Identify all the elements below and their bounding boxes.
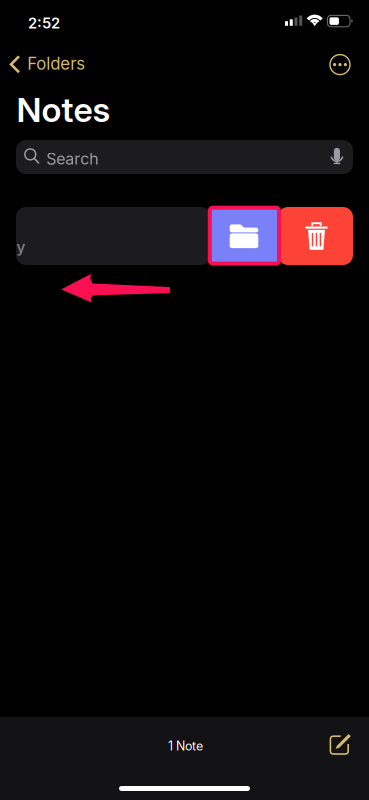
button[interactable]: Folders (4, 48, 104, 82)
staticText: Search (46, 149, 98, 168)
staticText: y (16, 238, 25, 257)
button[interactable]: New Note (319, 723, 363, 766)
button[interactable]: More (330, 55, 350, 75)
staticText: 1 Note (168, 738, 203, 753)
button[interactable]: Search (16, 140, 353, 174)
staticText: Notes (17, 89, 111, 130)
button[interactable]: Move to Folder (211, 207, 278, 265)
button[interactable]: Delete (278, 207, 353, 265)
staticText: Folders (27, 54, 85, 74)
button[interactable]: Note (16, 207, 211, 265)
staticText: 2:52 (28, 14, 60, 32)
